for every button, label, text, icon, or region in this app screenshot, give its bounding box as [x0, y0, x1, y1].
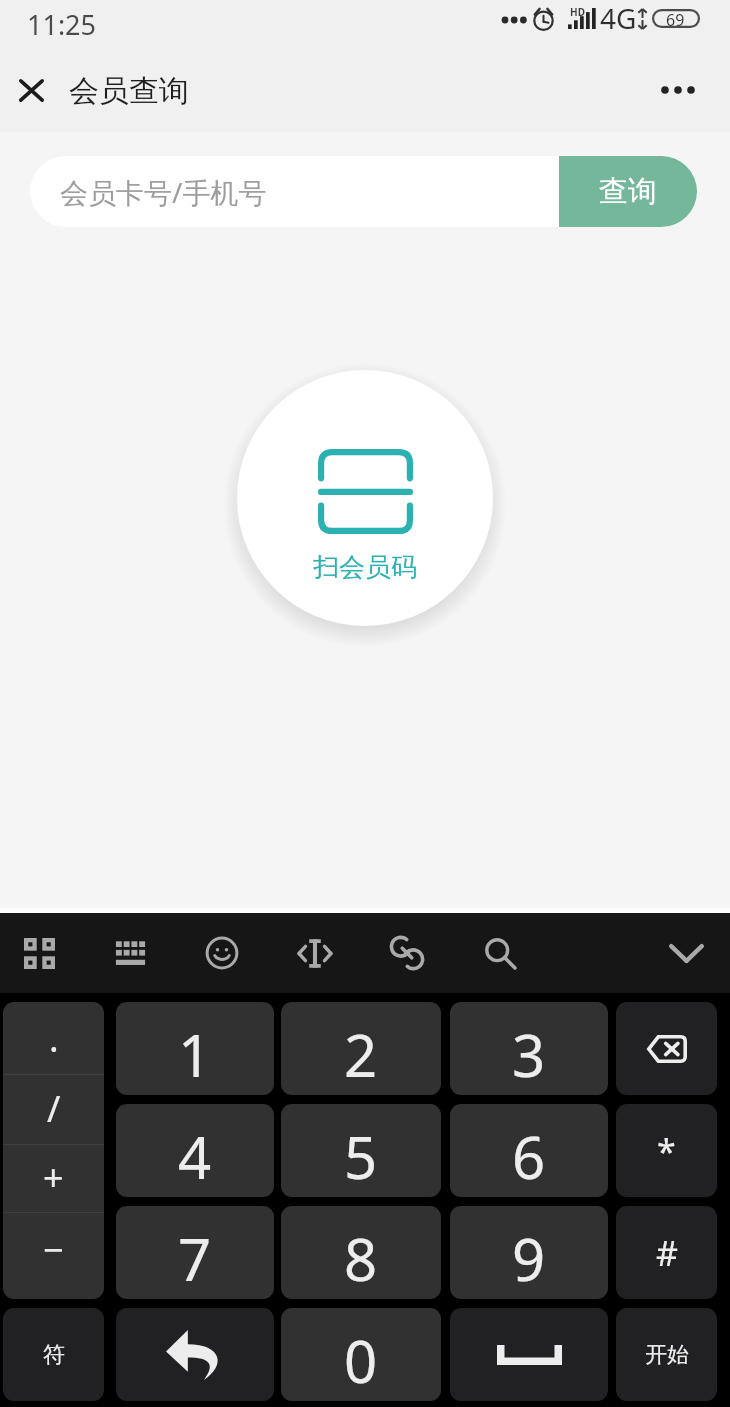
- button[interactable]: 6: [450, 1104, 608, 1197]
- button[interactable]: 符: [3, 1308, 104, 1401]
- staticText: HD: [570, 5, 585, 19]
- staticText: −: [43, 1225, 64, 1274]
- button[interactable]: 查询: [559, 156, 697, 227]
- staticText: 8: [344, 1219, 378, 1298]
- button[interactable]: 扫会员码: [237, 370, 493, 626]
- button[interactable]: 会员卡号/手机号: [30, 156, 559, 227]
- staticText: 4: [178, 1117, 212, 1196]
- staticText: #: [656, 1230, 678, 1276]
- button[interactable]: Space: [450, 1308, 608, 1401]
- staticText: 会员查询: [69, 72, 189, 110]
- staticText: .: [49, 1014, 59, 1063]
- staticText: 会员卡号/手机号: [60, 173, 267, 211]
- button[interactable]: Backspace: [616, 1002, 717, 1095]
- staticText: 1: [178, 1015, 212, 1094]
- button[interactable]: 开始: [616, 1308, 717, 1401]
- button[interactable]: Apps: [0, 913, 78, 993]
- button[interactable]: *: [616, 1104, 717, 1197]
- staticText: 7: [178, 1219, 212, 1298]
- button[interactable]: Return: [116, 1308, 274, 1401]
- staticText: 查询: [599, 173, 657, 210]
- button[interactable]: 3: [450, 1002, 608, 1095]
- staticText: 4G: [600, 0, 637, 37]
- staticText: 开始: [645, 1341, 689, 1369]
- button[interactable]: 8: [281, 1206, 441, 1299]
- staticText: 0: [344, 1321, 378, 1400]
- button[interactable]: 7: [116, 1206, 274, 1299]
- staticText: 扫会员码: [313, 551, 417, 584]
- staticText: 3: [512, 1015, 546, 1094]
- button[interactable]: Keyboard layouts: [91, 913, 169, 993]
- button[interactable]: Emoji: [183, 913, 261, 993]
- staticText: 11:25: [27, 6, 97, 43]
- staticText: 6: [512, 1117, 546, 1196]
- button[interactable]: +: [3, 1145, 104, 1212]
- button[interactable]: 1: [116, 1002, 274, 1095]
- button[interactable]: Text editing: [276, 913, 354, 993]
- staticText: +: [43, 1153, 64, 1202]
- button[interactable]: More options: [638, 57, 718, 123]
- staticText: 2: [344, 1015, 378, 1094]
- staticText: 5: [344, 1117, 378, 1196]
- staticText: 9: [512, 1219, 546, 1298]
- button[interactable]: 9: [450, 1206, 608, 1299]
- button[interactable]: Hide keyboard: [642, 913, 730, 993]
- button[interactable]: Search: [461, 913, 539, 993]
- button[interactable]: Clipboard: [368, 913, 446, 993]
- button[interactable]: −: [3, 1213, 104, 1299]
- staticText: *: [657, 1128, 676, 1174]
- staticText: /: [47, 1084, 61, 1133]
- button[interactable]: 5: [281, 1104, 441, 1197]
- button[interactable]: 2: [281, 1002, 441, 1095]
- button[interactable]: 0: [281, 1308, 441, 1401]
- button[interactable]: /: [3, 1075, 104, 1144]
- button[interactable]: Close: [0, 57, 62, 123]
- staticText: 符: [43, 1341, 65, 1369]
- button[interactable]: .: [3, 1002, 104, 1074]
- button[interactable]: #: [616, 1206, 717, 1299]
- button[interactable]: 4: [116, 1104, 274, 1197]
- staticText: 69: [666, 9, 685, 28]
